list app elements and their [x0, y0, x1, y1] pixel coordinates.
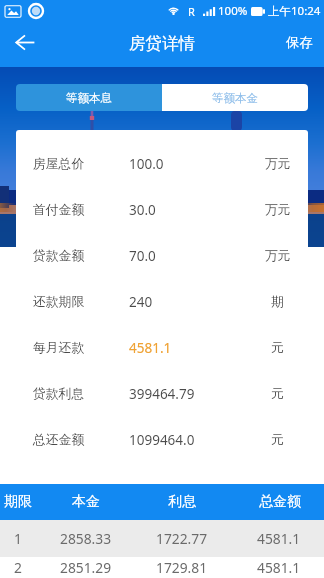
button[interactable]: 等额本金: [162, 84, 308, 111]
staticText: 100%: [218, 3, 248, 19]
staticText: 元: [247, 432, 308, 448]
staticText: 30.0: [129, 201, 247, 219]
staticText: 2: [14, 558, 22, 577]
staticText: 首付金额: [33, 202, 129, 218]
staticText: 万元: [247, 156, 308, 172]
staticText: 399464.79: [129, 385, 247, 403]
staticText: 1729.81: [156, 558, 208, 577]
button[interactable]: 等额本息: [16, 84, 162, 111]
staticText: 期限: [4, 493, 32, 511]
staticText: 4581.1: [129, 339, 247, 357]
staticText: 1099464.0: [129, 431, 247, 449]
staticText: 总还金额: [33, 432, 129, 448]
staticText: 100.0: [129, 155, 247, 173]
staticText: 房屋总价: [33, 156, 129, 172]
staticText: 元: [247, 386, 308, 402]
staticText: 万元: [247, 248, 308, 264]
staticText: 万元: [247, 202, 308, 218]
staticText: 总金额: [259, 493, 301, 511]
staticText: 期: [247, 294, 308, 310]
staticText: 利息: [168, 493, 196, 511]
staticText: 240: [129, 293, 247, 311]
staticText: 2851.29: [60, 558, 112, 577]
staticText: 元: [247, 340, 308, 356]
staticText: 本金: [72, 493, 100, 511]
staticText: 保存: [286, 34, 313, 51]
staticText: 等额本金: [212, 91, 258, 105]
button[interactable]: 1: [0, 520, 324, 557]
staticText: 70.0: [129, 247, 247, 265]
button[interactable]: Back: [4, 22, 46, 63]
staticText: 每月还款: [33, 340, 129, 356]
staticText: 还款期限: [33, 294, 129, 310]
staticText: 贷款金额: [33, 248, 129, 264]
staticText: 1: [14, 529, 22, 548]
staticText: 上午10:24: [268, 3, 321, 19]
staticText: 4581.1: [257, 529, 301, 548]
staticText: 房贷详情: [129, 33, 195, 54]
staticText: 贷款利息: [33, 386, 129, 402]
button[interactable]: 2: [0, 557, 324, 578]
button[interactable]: 保存: [273, 25, 324, 64]
staticText: 4581.1: [257, 558, 301, 577]
staticText: R: [188, 4, 195, 19]
staticText: 等额本息: [66, 91, 112, 105]
staticText: 1722.77: [156, 529, 208, 548]
staticText: 2858.33: [60, 529, 112, 548]
